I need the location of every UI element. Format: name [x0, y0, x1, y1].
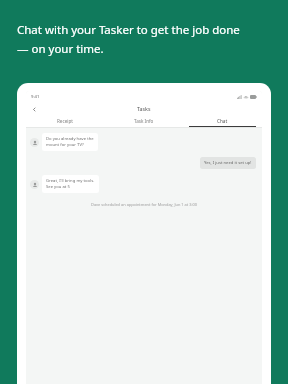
other: Contact avatar: [30, 138, 39, 147]
staticText: Receipt: [57, 118, 73, 124]
staticText: Great, I'll bring my tools. See you at 5: [46, 178, 95, 190]
button[interactable]: Great, I'll bring my tools. See you at 5: [42, 175, 99, 193]
staticText: Dave scheduled an appointment for Monday…: [91, 202, 197, 207]
button[interactable]: Task Info: [104, 115, 183, 127]
button[interactable]: Do you already have the mount for your T…: [42, 133, 98, 151]
button[interactable]: Back: [29, 104, 39, 114]
staticText: Tasks: [137, 105, 151, 112]
staticText: Yes, I just need it set up!: [204, 160, 252, 166]
button[interactable]: Chat: [183, 115, 262, 127]
other: Contact avatar: [30, 180, 39, 189]
staticText: 9:41: [31, 94, 40, 100]
button[interactable]: Yes, I just need it set up!: [200, 157, 256, 169]
staticText: Do you already have the mount for your T…: [46, 136, 94, 148]
staticText: Chat: [217, 118, 228, 124]
staticText: Task Info: [134, 118, 154, 124]
staticText: — on your time.: [17, 41, 104, 57]
button[interactable]: Receipt: [26, 115, 104, 127]
staticText: Chat with your Tasker to get the job don…: [17, 22, 240, 38]
